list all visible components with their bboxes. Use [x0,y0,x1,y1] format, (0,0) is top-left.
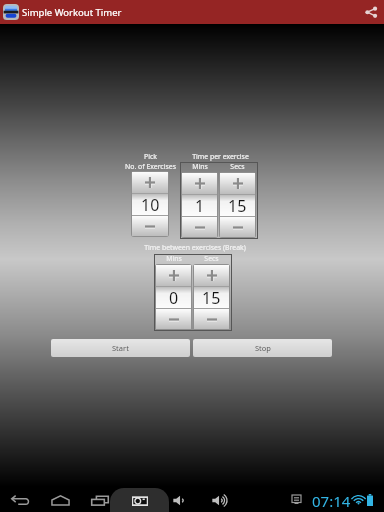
button[interactable]: Volume down [171,490,191,510]
button[interactable]: 1 [182,195,217,216]
button[interactable] [182,173,217,194]
button[interactable] [182,217,217,237]
staticText: Simple Workout Timer [22,6,122,19]
button[interactable]: 0 [156,287,191,308]
staticText: Start [112,343,129,353]
button[interactable]: Stop [193,339,332,357]
staticText: Pick [144,152,157,161]
button[interactable] [220,173,255,194]
button[interactable] [220,217,255,237]
button[interactable]: Home [49,489,71,511]
staticText: Secs [204,254,219,263]
button[interactable] [156,265,191,286]
staticText: 10 [141,194,160,215]
button[interactable]: 15 [194,287,229,308]
button[interactable]: Screenshot [129,489,151,511]
button[interactable]: Volume up [210,490,230,510]
button[interactable] [132,216,168,236]
staticText: Time between exercises (Break) [144,243,246,252]
staticText: Stop [255,343,271,353]
staticText: 1 [195,195,205,216]
button[interactable] [156,309,191,329]
staticText: Mins [192,162,208,171]
button[interactable]: Recents [89,489,111,511]
button[interactable] [194,265,229,286]
button[interactable]: Back [9,489,31,511]
staticText: 15 [228,195,247,216]
button[interactable]: Share [360,1,382,23]
staticText: 07:14 [312,491,351,511]
staticText: No. of Exercises [125,162,176,171]
button[interactable]: 15 [220,195,255,216]
button[interactable]: 10 [132,194,168,215]
staticText: 0 [169,287,179,308]
staticText: Time per exercise [192,152,249,161]
staticText: 15 [202,287,221,308]
button[interactable]: Start [51,339,190,357]
staticText: Secs [230,162,245,171]
button[interactable] [194,309,229,329]
staticText: Mins [166,254,182,263]
button[interactable] [132,172,168,193]
